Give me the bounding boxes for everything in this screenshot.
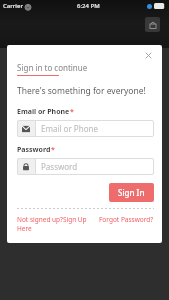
button[interactable]: Password [17, 158, 154, 175]
button[interactable]: Forgot Password? [99, 215, 154, 224]
staticText: Carrier [3, 2, 23, 10]
button[interactable]: Not signed up?Sign Up Here [17, 215, 93, 233]
staticText: * [51, 145, 55, 155]
staticText: Sign in to continue [17, 62, 88, 73]
staticText: Not signed up?Sign Up Here [17, 215, 93, 233]
button[interactable]: Close [142, 49, 154, 61]
staticText: 6:24 PM [77, 2, 100, 10]
staticText: Password [17, 145, 51, 155]
staticText: * [70, 107, 74, 117]
button[interactable]: Email or Phone [17, 120, 154, 137]
button[interactable]: Sign In [109, 183, 154, 202]
staticText: Password [41, 161, 78, 172]
button[interactable]: Cart [145, 17, 160, 32]
staticText: Email or Phone [41, 123, 98, 134]
staticText: Forgot Password? [99, 215, 154, 224]
staticText: There's something for everyone! [17, 85, 146, 97]
staticText: Sign In [118, 187, 145, 198]
staticText: Email or Phone [17, 107, 70, 117]
button[interactable]: Sign in to continue [17, 62, 88, 76]
